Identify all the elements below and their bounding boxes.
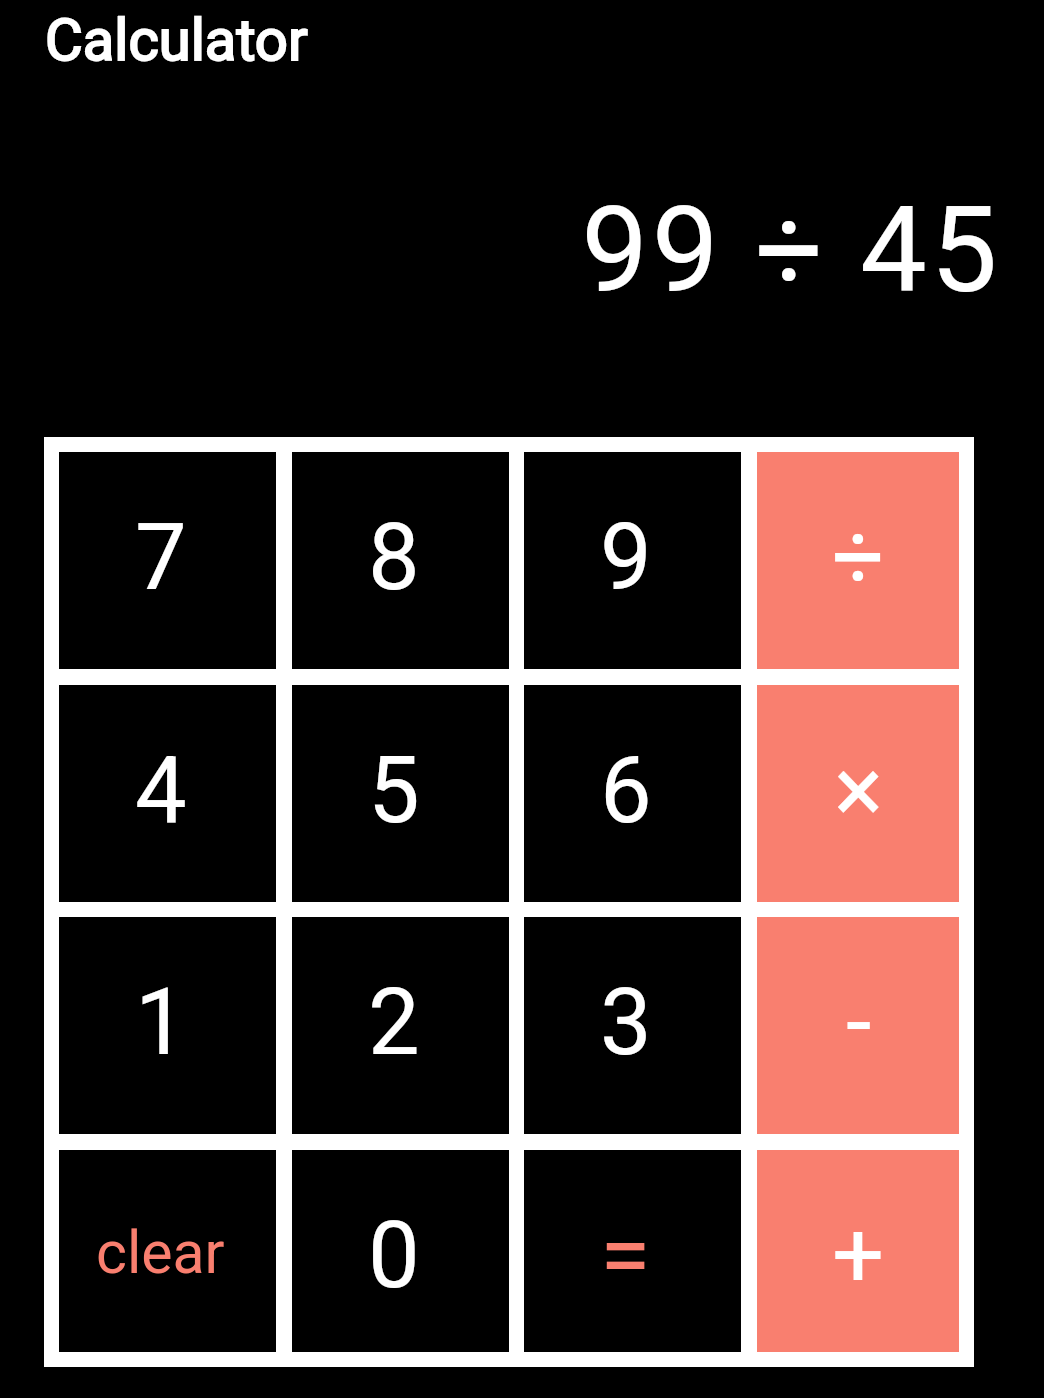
staticText: 8 [368, 504, 420, 612]
staticText: 99 ÷ 45 [0, 181, 1001, 320]
staticText: 5 [368, 737, 420, 845]
button[interactable]: Zero [292, 1150, 509, 1352]
button[interactable]: Nine [524, 452, 741, 669]
staticText: ÷ [832, 504, 885, 612]
button[interactable]: Subtract [757, 917, 959, 1134]
button[interactable]: Equals [524, 1150, 741, 1352]
button[interactable]: Clear [59, 1150, 276, 1352]
staticText: + [832, 1202, 885, 1310]
button[interactable]: Three [524, 917, 741, 1134]
button[interactable]: Divide [757, 452, 959, 669]
staticText: - [846, 969, 872, 1077]
button[interactable]: Seven [59, 452, 276, 669]
staticText: Calculator [45, 6, 308, 74]
staticText: clear [96, 1218, 225, 1287]
staticText: 3 [600, 969, 652, 1077]
staticText: 0 [368, 1202, 420, 1310]
button[interactable]: Eight [292, 452, 509, 669]
staticText: 7 [135, 504, 187, 612]
button[interactable]: Four [59, 685, 276, 902]
button[interactable]: Two [292, 917, 509, 1134]
button[interactable]: Multiply [757, 685, 959, 902]
staticText: 1 [135, 969, 187, 1077]
button[interactable]: Add [757, 1150, 959, 1352]
button[interactable]: Five [292, 685, 509, 902]
button[interactable]: Six [524, 685, 741, 902]
staticText: 6 [600, 737, 652, 845]
staticText: × [834, 737, 884, 845]
staticText: 2 [368, 969, 420, 1077]
staticText: = [600, 1202, 651, 1310]
button[interactable]: One [59, 917, 276, 1134]
staticText: 4 [135, 737, 187, 845]
staticText: 9 [600, 504, 652, 612]
